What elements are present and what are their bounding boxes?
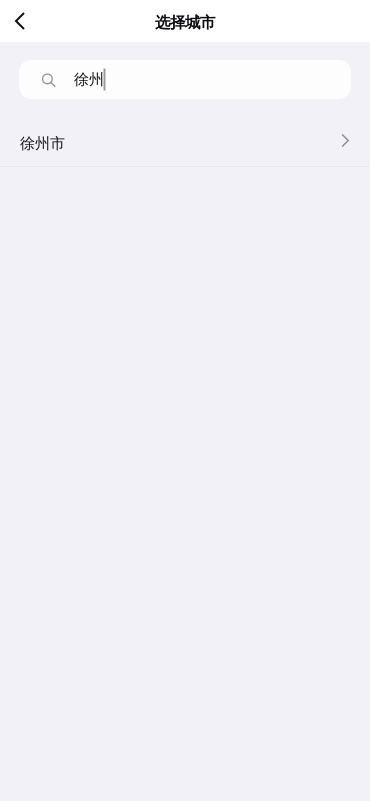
staticText: 徐州 xyxy=(74,70,104,89)
staticText: 选择城市 xyxy=(155,13,215,32)
button[interactable]: Back xyxy=(0,0,40,42)
button[interactable]: 徐州市 xyxy=(0,118,370,167)
button[interactable]: Search city xyxy=(0,42,370,99)
staticText: 徐州市 xyxy=(20,134,65,153)
